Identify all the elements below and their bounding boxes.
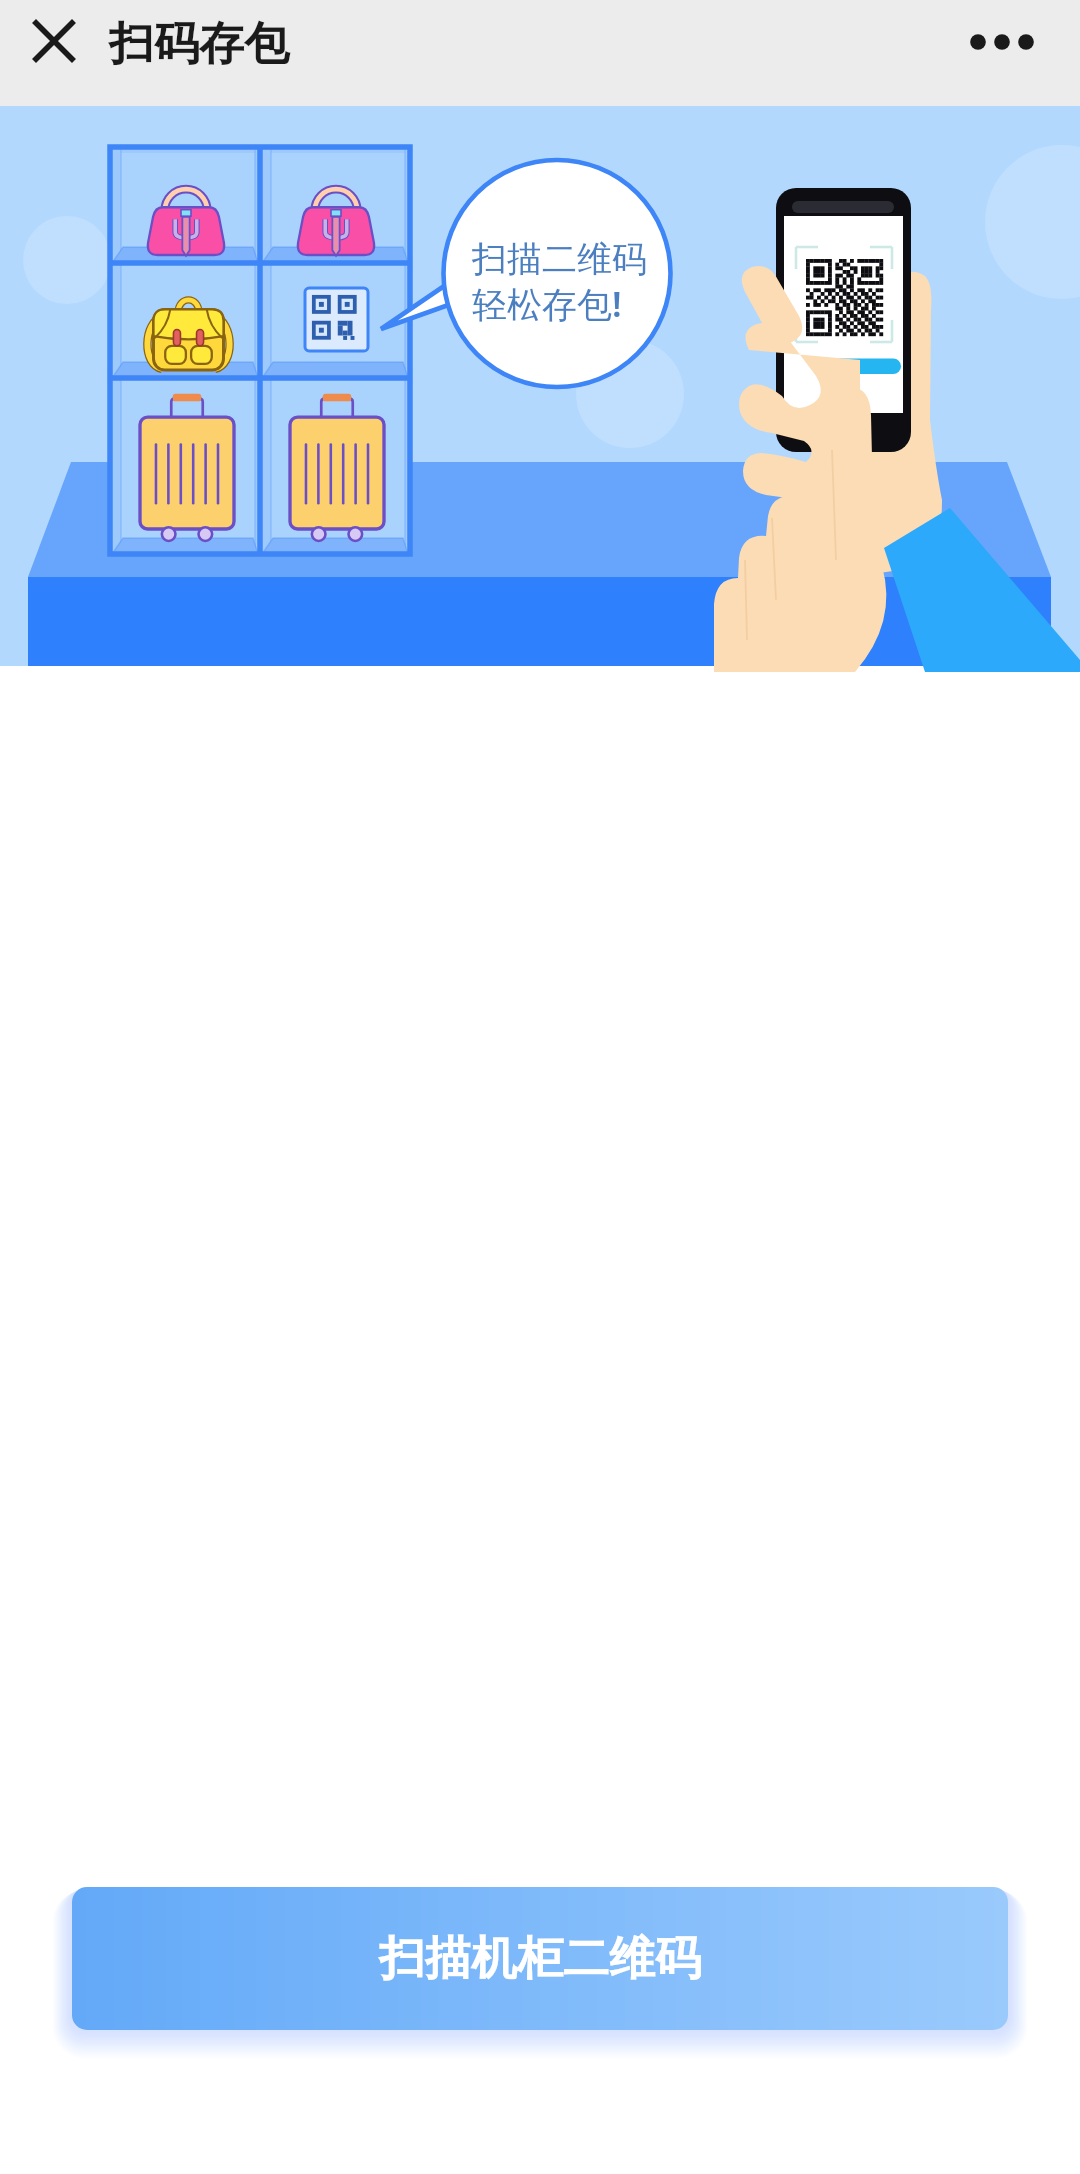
button[interactable]: Close [16, 3, 92, 79]
button[interactable]: 扫描机柜二维码 [72, 1887, 1008, 2030]
staticText: 扫码存包 [109, 16, 289, 73]
staticText: 扫描二维码 轻松存包! [472, 237, 647, 328]
button[interactable]: More options [954, 11, 1050, 73]
staticText: 扫描机柜二维码 [379, 1930, 701, 1988]
